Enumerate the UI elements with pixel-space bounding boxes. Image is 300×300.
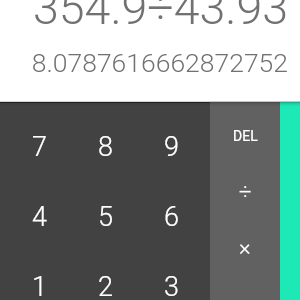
staticText: 9: [164, 131, 179, 163]
staticText: 354.9÷43.93: [12, 0, 288, 35]
staticText: 2: [98, 271, 113, 300]
staticText: ÷: [239, 179, 252, 205]
staticText: 8.0787616662872752: [12, 47, 288, 78]
button[interactable]: Multiply: [210, 220, 280, 276]
staticText: 8: [98, 131, 113, 163]
button[interactable]: 1: [7, 252, 72, 300]
button[interactable]: Delete: [210, 108, 280, 164]
staticText: 6: [164, 201, 179, 233]
button[interactable]: 3: [138, 252, 204, 300]
button[interactable]: 5: [72, 182, 138, 252]
button[interactable]: Divide: [210, 164, 280, 220]
staticText: 7: [32, 131, 47, 163]
button[interactable]: 9: [138, 112, 204, 182]
staticText: 4: [32, 201, 47, 233]
staticText: ×: [239, 235, 251, 261]
button[interactable]: 4: [7, 182, 72, 252]
button[interactable]: Equals: [280, 102, 300, 300]
staticText: 1: [32, 271, 47, 300]
staticText: DEL: [233, 128, 258, 144]
staticText: 3: [164, 271, 179, 300]
staticText: 5: [98, 201, 113, 233]
button[interactable]: 2: [72, 252, 138, 300]
button[interactable]: 6: [138, 182, 204, 252]
button[interactable]: 7: [7, 112, 72, 182]
button[interactable]: 8: [72, 112, 138, 182]
